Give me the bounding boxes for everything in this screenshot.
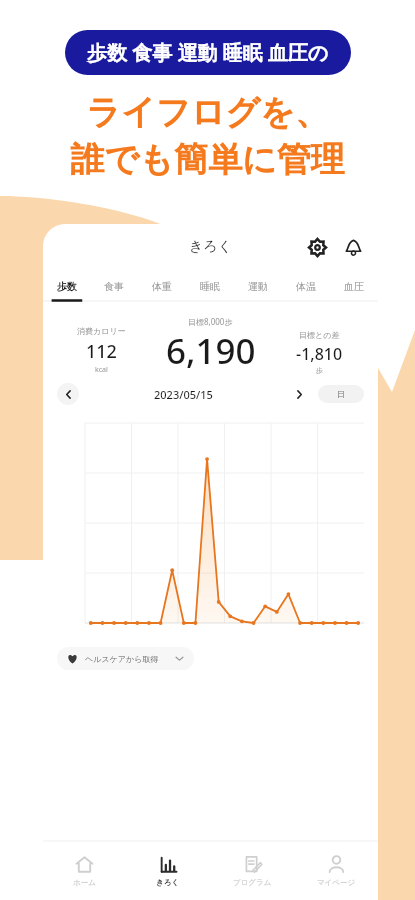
button[interactable]: Notifications: [338, 232, 368, 262]
staticText: ライフログを、: [0, 91, 415, 134]
button[interactable]: ホーム: [43, 842, 126, 900]
button[interactable]: 日: [318, 385, 364, 403]
staticText: 2023/05/15: [154, 387, 213, 402]
staticText: 消費カロリー: [77, 326, 126, 336]
staticText: 6,190: [166, 327, 256, 375]
staticText: 食事: [104, 280, 124, 293]
staticText: -1,810: [296, 343, 343, 365]
button[interactable]: プログラム: [210, 842, 294, 900]
staticText: 目標8,000歩: [188, 316, 233, 327]
staticText: 体温: [296, 280, 316, 293]
staticText: 血圧: [344, 280, 364, 293]
button[interactable]: きろく: [126, 842, 210, 900]
button[interactable]: Previous day: [57, 383, 79, 405]
button[interactable]: マイページ: [294, 842, 378, 900]
staticText: 歩: [316, 366, 323, 375]
staticText: 日: [337, 389, 345, 399]
button[interactable]: 体重: [138, 270, 186, 302]
button[interactable]: Next day: [288, 383, 310, 405]
staticText: マイページ: [317, 878, 356, 887]
staticText: kcal: [95, 365, 108, 375]
staticText: プログラム: [233, 878, 272, 887]
staticText: ホーム: [73, 878, 96, 887]
button[interactable]: 睡眠: [186, 270, 234, 302]
staticText: 目標との差: [299, 330, 340, 340]
button[interactable]: 歩数 食事 運動 睡眠 血圧の: [65, 30, 351, 75]
staticText: きろく: [189, 238, 232, 256]
button[interactable]: ヘルスケアから取得: [57, 647, 194, 670]
button[interactable]: 運動: [234, 270, 282, 302]
staticText: 歩数: [57, 280, 77, 293]
staticText: 112: [86, 339, 117, 364]
staticText: きろく: [156, 878, 180, 887]
staticText: 体重: [152, 280, 172, 293]
button[interactable]: 体温: [282, 270, 330, 302]
staticText: 運動: [248, 280, 268, 293]
button[interactable]: Settings: [302, 232, 332, 262]
button[interactable]: 血圧: [330, 270, 378, 302]
staticText: 睡眠: [200, 280, 220, 293]
staticText: 誰でも簡単に管理: [0, 138, 415, 181]
button[interactable]: 歩数: [43, 270, 90, 302]
staticText: ヘルスケアから取得: [85, 654, 159, 664]
staticText: 歩数 食事 運動 睡眠 血圧の: [87, 39, 329, 66]
button[interactable]: 食事: [90, 270, 138, 302]
